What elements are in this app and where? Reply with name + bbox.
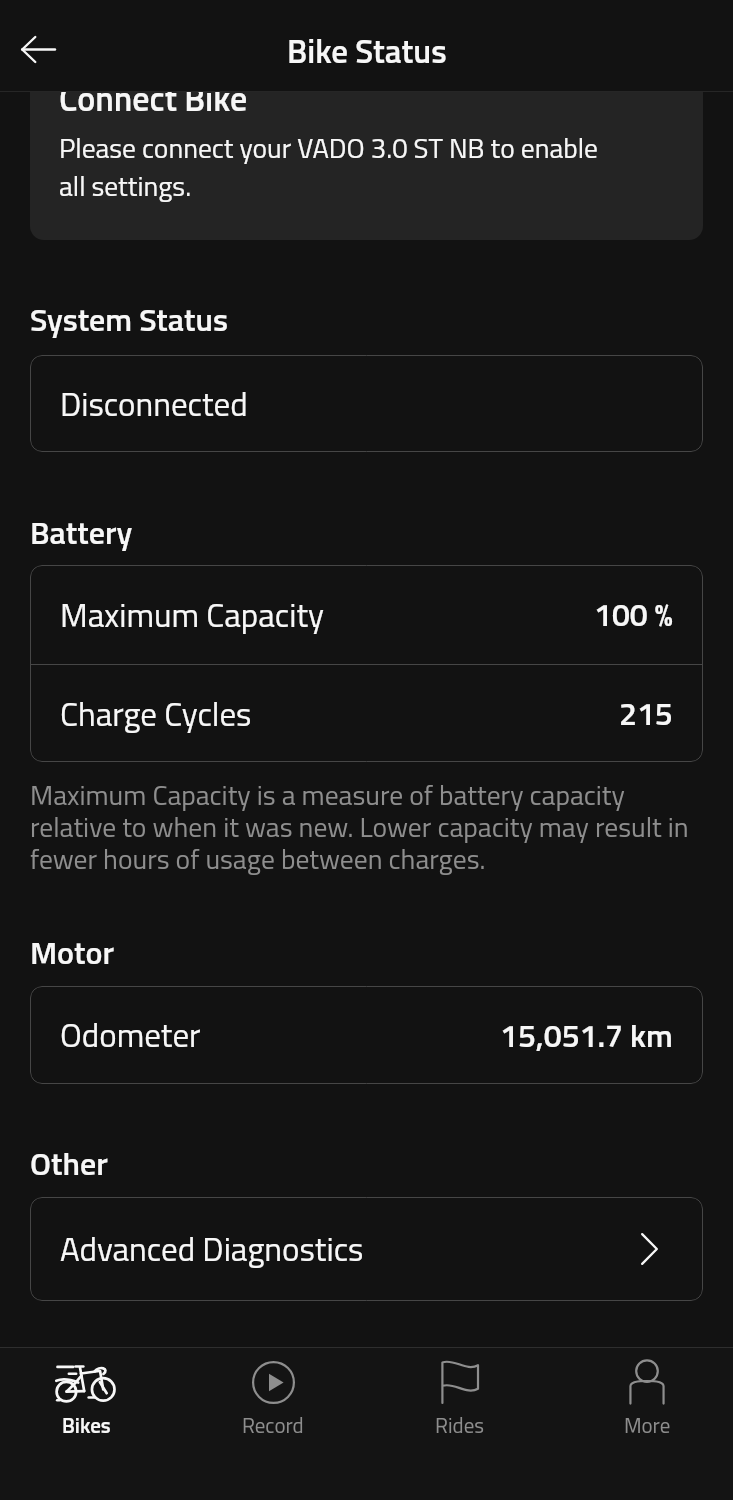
staticText: Disconnected [60,379,248,429]
button[interactable]: Connect Bike [30,62,703,240]
staticText: Odometer [60,1010,201,1060]
button[interactable]: Maximum Capacity [30,565,703,664]
staticText: Maximum Capacity [60,590,324,640]
staticText: Battery [30,508,133,557]
button[interactable]: More [554,1355,733,1441]
staticText: Please connect your VADO 3.0 ST NB to en… [59,127,629,207]
staticText: Other [30,1139,108,1188]
button[interactable]: Bikes [0,1355,179,1441]
staticText: Connect Bike [59,72,248,124]
staticText: Bikes [62,1409,111,1441]
button[interactable]: Record [180,1355,366,1441]
staticText: 215 [619,689,673,738]
button[interactable]: Odometer [30,986,703,1084]
button[interactable]: Rides [367,1355,553,1441]
staticText: System Status [30,295,228,344]
staticText: Maximum Capacity is a measure of battery… [30,774,703,880]
staticText: Advanced Diagnostics [60,1224,364,1274]
button[interactable]: Advanced Diagnostics [30,1197,703,1301]
staticText: 15,051.7 km [500,1011,673,1060]
staticText: Record [242,1409,304,1441]
staticText: Bike Status [287,26,447,76]
button[interactable]: Disconnected [30,355,703,452]
staticText: Motor [30,928,114,977]
button[interactable]: Back [0,14,76,86]
staticText: Charge Cycles [60,689,252,739]
button[interactable]: Charge Cycles [30,665,703,762]
staticText: 100 % [594,590,673,639]
staticText: Rides [435,1409,485,1441]
staticText: More [624,1409,671,1441]
